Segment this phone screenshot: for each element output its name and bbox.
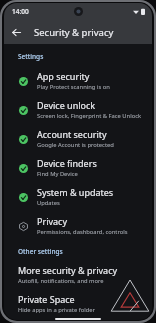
button[interactable]: More security & privacy [4, 260, 152, 289]
staticText: Autofill, notifications, and more [18, 277, 104, 285]
staticText: Google Account is protected [37, 141, 114, 149]
staticText: Device unlock [37, 99, 96, 111]
button[interactable]: App security [4, 66, 152, 95]
staticText: Private Space [18, 293, 75, 305]
staticText: Screen lock, Fingerprint & Face Unlock [37, 112, 142, 120]
button[interactable]: System & updates [4, 182, 152, 211]
button[interactable]: Privacy [4, 211, 152, 240]
staticText: Device finders [37, 157, 97, 169]
staticText: App security [37, 70, 90, 82]
button[interactable]: Back [8, 24, 24, 40]
staticText: Security & privacy [34, 26, 114, 39]
staticText: System & updates [37, 186, 114, 198]
staticText: 14:00 [12, 7, 29, 16]
button[interactable]: Device unlock [4, 95, 152, 124]
staticText: Hide apps in a private folder [18, 306, 95, 314]
staticText: Updates [37, 199, 60, 207]
button[interactable]: Device finders [4, 153, 152, 182]
button[interactable]: Account security [4, 124, 152, 153]
staticText: Privacy [37, 215, 68, 227]
staticText: Account security [37, 128, 107, 140]
staticText: Settings [18, 52, 44, 61]
button[interactable]: Private Space [4, 289, 152, 318]
staticText: More security & privacy [18, 264, 118, 276]
staticText: Play Protect scanning is on [37, 83, 110, 91]
staticText: Find My Device [37, 170, 78, 178]
staticText: Permissions, dashboard, controls [37, 228, 128, 236]
staticText: Other settings [18, 247, 63, 256]
